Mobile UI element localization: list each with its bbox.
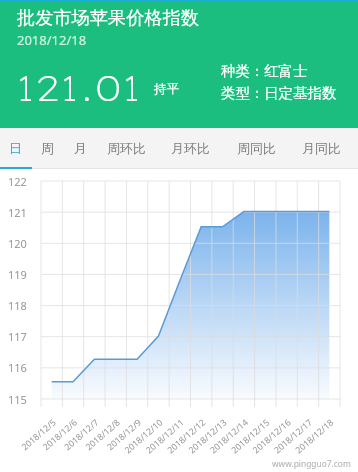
staticText: 日 <box>9 141 22 157</box>
staticText: 持平 <box>154 81 179 97</box>
staticText: 周环比 <box>107 141 146 157</box>
button[interactable]: 周环比 <box>100 128 153 169</box>
staticText: 批发市场苹果价格指数 <box>17 6 199 29</box>
staticText: 月同比 <box>302 141 341 157</box>
button[interactable]: 月同比 <box>294 128 348 169</box>
staticText: 周同比 <box>237 141 276 157</box>
staticText: 种类：红富士 <box>221 62 308 80</box>
staticText: 类型：日定基指数 <box>221 84 337 102</box>
staticText: 月 <box>74 141 87 157</box>
staticText: 月环比 <box>171 141 210 157</box>
button[interactable]: 日 <box>1 128 29 169</box>
staticText: 121.01 <box>16 65 141 110</box>
button[interactable]: 周 <box>33 128 62 169</box>
staticText: 周 <box>41 141 54 157</box>
button[interactable]: 月环比 <box>163 128 217 169</box>
button[interactable]: 周同比 <box>230 128 283 169</box>
button[interactable]: 月 <box>66 128 94 169</box>
staticText: 2018/12/18 <box>17 31 87 49</box>
